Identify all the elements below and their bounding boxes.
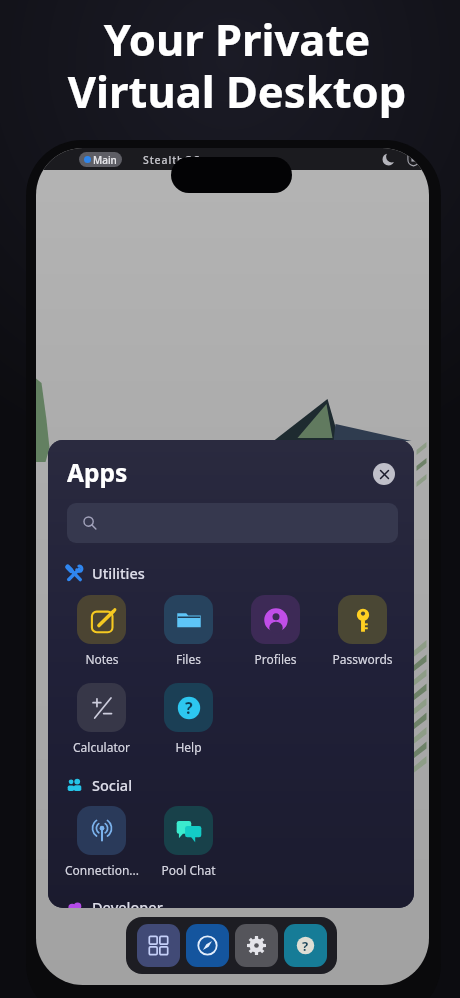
staticText: Profiles: [254, 651, 297, 667]
button[interactable]: [67, 503, 398, 543]
button[interactable]: Main: [84, 152, 117, 167]
staticText: ?: [185, 697, 193, 719]
button[interactable]: Profiles: [232, 595, 319, 667]
staticText: Connection...: [65, 862, 139, 878]
staticText: Main: [93, 153, 117, 167]
staticText: Passwords: [332, 651, 393, 667]
button[interactable]: Connection...: [58, 806, 145, 878]
staticText: ?: [302, 937, 309, 955]
staticText: Developer: [92, 897, 163, 908]
button[interactable]: Help: [284, 924, 327, 967]
staticText: Social: [92, 775, 133, 795]
button[interactable]: Security: [405, 151, 421, 167]
button[interactable]: Passwords: [319, 595, 406, 667]
staticText: Your Private Virtual Desktop: [7, 9, 460, 120]
staticText: Files: [176, 651, 201, 667]
button[interactable]: Calculator: [58, 683, 145, 755]
button[interactable]: Settings: [235, 924, 278, 967]
button[interactable]: Notes: [58, 595, 145, 667]
button[interactable]: Dark mode: [380, 151, 396, 167]
staticText: Apps: [67, 456, 128, 489]
button[interactable]: Close: [373, 463, 395, 485]
staticText: StealthOS: [143, 153, 201, 167]
button[interactable]: Files: [145, 595, 232, 667]
staticText: Utilities: [92, 563, 145, 583]
button[interactable]: Browser: [186, 924, 229, 967]
staticText: Notes: [85, 651, 119, 667]
button[interactable]: Apps: [137, 924, 180, 967]
staticText: Help: [175, 739, 202, 755]
button[interactable]: ?: [145, 683, 232, 755]
button[interactable]: Pool Chat: [145, 806, 232, 878]
staticText: Pool Chat: [161, 862, 216, 878]
staticText: Calculator: [73, 739, 130, 755]
